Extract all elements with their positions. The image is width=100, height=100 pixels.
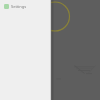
other: Settings app icon — [4, 4, 9, 9]
button[interactable]: Settings app icon — [4, 4, 48, 9]
staticText: Settings — [11, 4, 27, 9]
